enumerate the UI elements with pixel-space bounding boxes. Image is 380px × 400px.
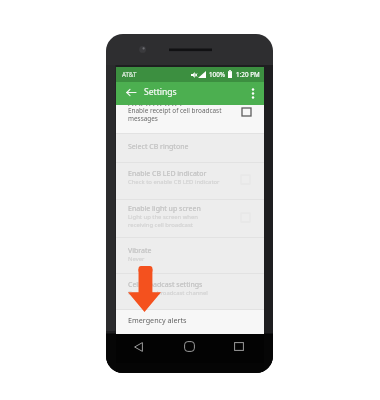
button[interactable]: [116, 105, 264, 133]
staticText: Vibrate: [128, 246, 152, 256]
staticText: Light up the screen when receiving cell …: [128, 213, 198, 229]
button[interactable]: [116, 199, 264, 237]
staticText: Enable CB LED indicator: [128, 169, 207, 179]
button[interactable]: Back: [128, 332, 148, 361]
staticText: Settings: [144, 86, 177, 98]
button[interactable]: Home: [179, 332, 199, 361]
staticText: Emergency alerts: [128, 315, 187, 325]
button[interactable]: Recent apps: [229, 332, 249, 361]
button[interactable]: [116, 309, 264, 334]
staticText: Configure broadcast channel: [128, 289, 208, 297]
staticText: Select CB ringtone: [128, 142, 189, 152]
button[interactable]: [116, 237, 264, 273]
staticText: Never: [128, 255, 145, 263]
staticText: 100%: [209, 70, 226, 79]
button[interactable]: More options: [242, 82, 264, 105]
button[interactable]: Navigate up: [120, 81, 142, 104]
staticText: 1:20 PM: [236, 70, 260, 79]
staticText: Enable light up screen: [128, 204, 201, 214]
button[interactable]: [116, 133, 264, 162]
staticText: Cell broadcast settings: [128, 280, 203, 290]
staticText: Check to enable CB LED indicator: [128, 178, 220, 186]
staticText: AT&T: [122, 70, 137, 78]
button[interactable]: [116, 273, 264, 309]
staticText: Enable receipt of cell broadcast message…: [128, 106, 222, 123]
button[interactable]: [116, 162, 264, 200]
